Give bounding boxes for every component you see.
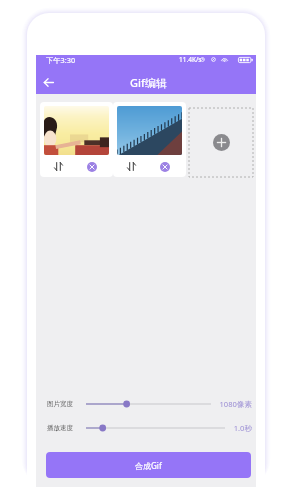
button[interactable]: Reorder (113, 102, 186, 177)
button[interactable]: Remove (157, 159, 172, 174)
button[interactable]: 图片宽度 (86, 397, 211, 411)
button[interactable]: Back (38, 69, 59, 95)
button[interactable]: Remove (84, 159, 99, 174)
button[interactable]: 合成Gif (46, 452, 251, 478)
button[interactable]: Reorder (124, 159, 139, 174)
staticText: 播放速度 (47, 424, 73, 432)
staticText: 图片宽度 (47, 400, 73, 408)
staticText: 1.0秒 (233, 423, 252, 433)
button[interactable]: 播放速度 (86, 421, 225, 435)
button[interactable]: Reorder (51, 159, 66, 174)
button[interactable]: Add image (189, 108, 253, 177)
staticText: 11.4K/s (179, 55, 202, 64)
button[interactable]: Reorder (40, 102, 113, 177)
staticText: 1080像素 (219, 399, 252, 409)
staticText: Gif编辑 (130, 75, 167, 90)
staticText: 合成Gif (135, 460, 162, 471)
staticText: 下午3:30 (46, 55, 76, 64)
